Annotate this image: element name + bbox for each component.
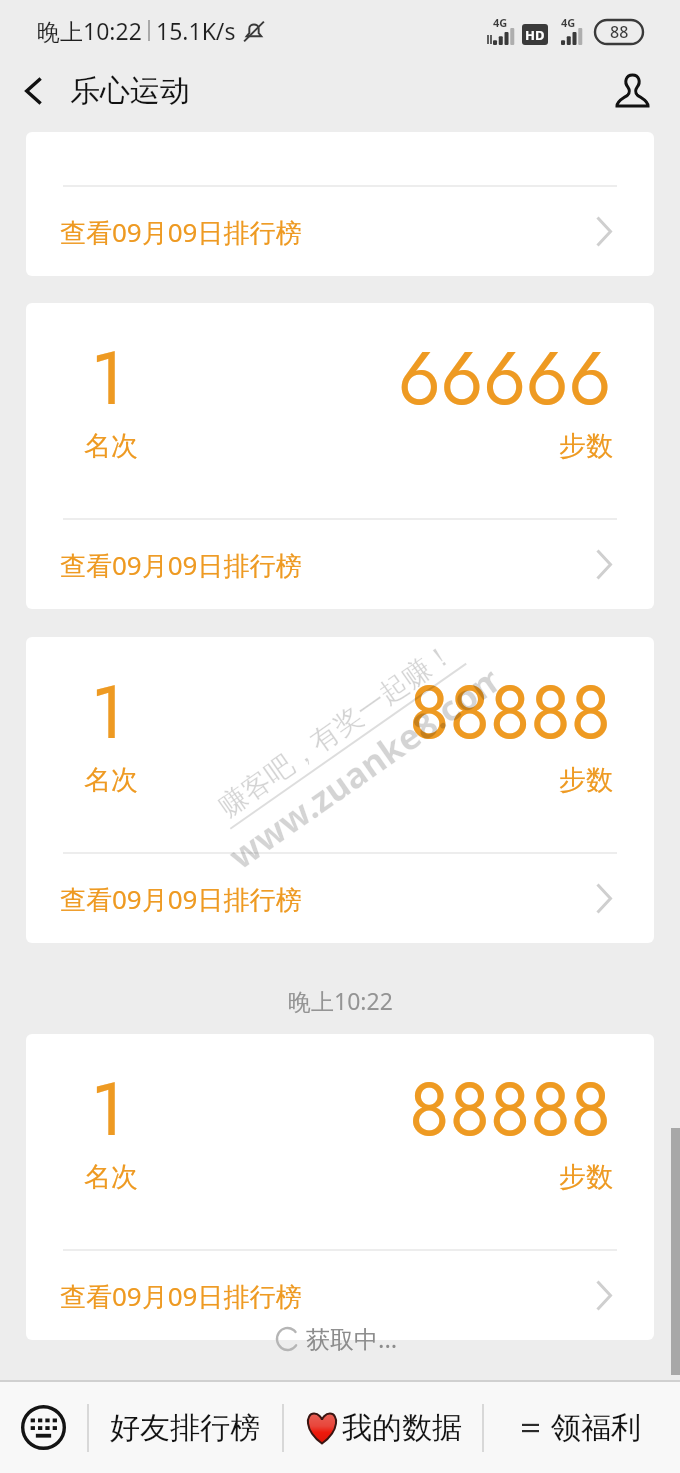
staticText: HD — [525, 26, 545, 44]
staticText: 4G — [493, 15, 508, 30]
staticText: 乐心运动 — [70, 72, 190, 110]
staticText: 88888 — [409, 659, 612, 766]
staticText: 我的数据 — [342, 1409, 462, 1447]
staticText: 88888 — [409, 1056, 612, 1163]
staticText: 查看09月09日排行榜 — [60, 881, 302, 917]
button[interactable]: 查看09月09日排行榜 — [26, 520, 654, 609]
button[interactable]: 领福利 — [482, 1382, 680, 1473]
button[interactable]: 查看09月09日排行榜 — [26, 187, 654, 276]
button[interactable]: Keyboard — [0, 1382, 87, 1473]
staticText: 查看09月09日排行榜 — [60, 1278, 302, 1314]
button[interactable]: Back — [0, 53, 66, 128]
staticText: 领福利 — [551, 1409, 641, 1447]
staticText: 4G — [561, 15, 576, 30]
staticText: 查看09月09日排行榜 — [60, 214, 302, 250]
staticText: 查看09月09日排行榜 — [60, 547, 302, 583]
staticText: 1 — [91, 325, 125, 432]
staticText: 66666 — [398, 325, 612, 432]
staticText: 名次 — [84, 429, 138, 463]
staticText: 名次 — [84, 763, 138, 797]
staticText: www.zuanke8.com — [219, 657, 509, 880]
staticText: 赚客吧，有奖一起赚！ — [212, 635, 461, 824]
button[interactable]: 查看09月09日排行榜 — [26, 1251, 654, 1340]
staticText: 名次 — [84, 1160, 138, 1194]
staticText: 晚上10:22 — [37, 15, 142, 46]
staticText: 获取中... — [306, 1322, 398, 1355]
staticText: 15.1K/s — [156, 15, 236, 46]
button[interactable]: Profile — [584, 53, 680, 128]
button[interactable]: 好友排行榜 — [87, 1382, 282, 1473]
staticText: 晚上10:22 — [288, 985, 393, 1016]
staticText: 步数 — [559, 429, 613, 463]
staticText: 步数 — [559, 763, 613, 797]
staticText: 88 — [610, 21, 629, 43]
staticText: 1 — [91, 1056, 125, 1163]
staticText: 好友排行榜 — [110, 1409, 260, 1447]
button[interactable]: 我的数据 — [282, 1382, 482, 1473]
staticText: 1 — [91, 659, 125, 766]
button[interactable]: 查看09月09日排行榜 — [26, 854, 654, 943]
staticText: 步数 — [559, 1160, 613, 1194]
